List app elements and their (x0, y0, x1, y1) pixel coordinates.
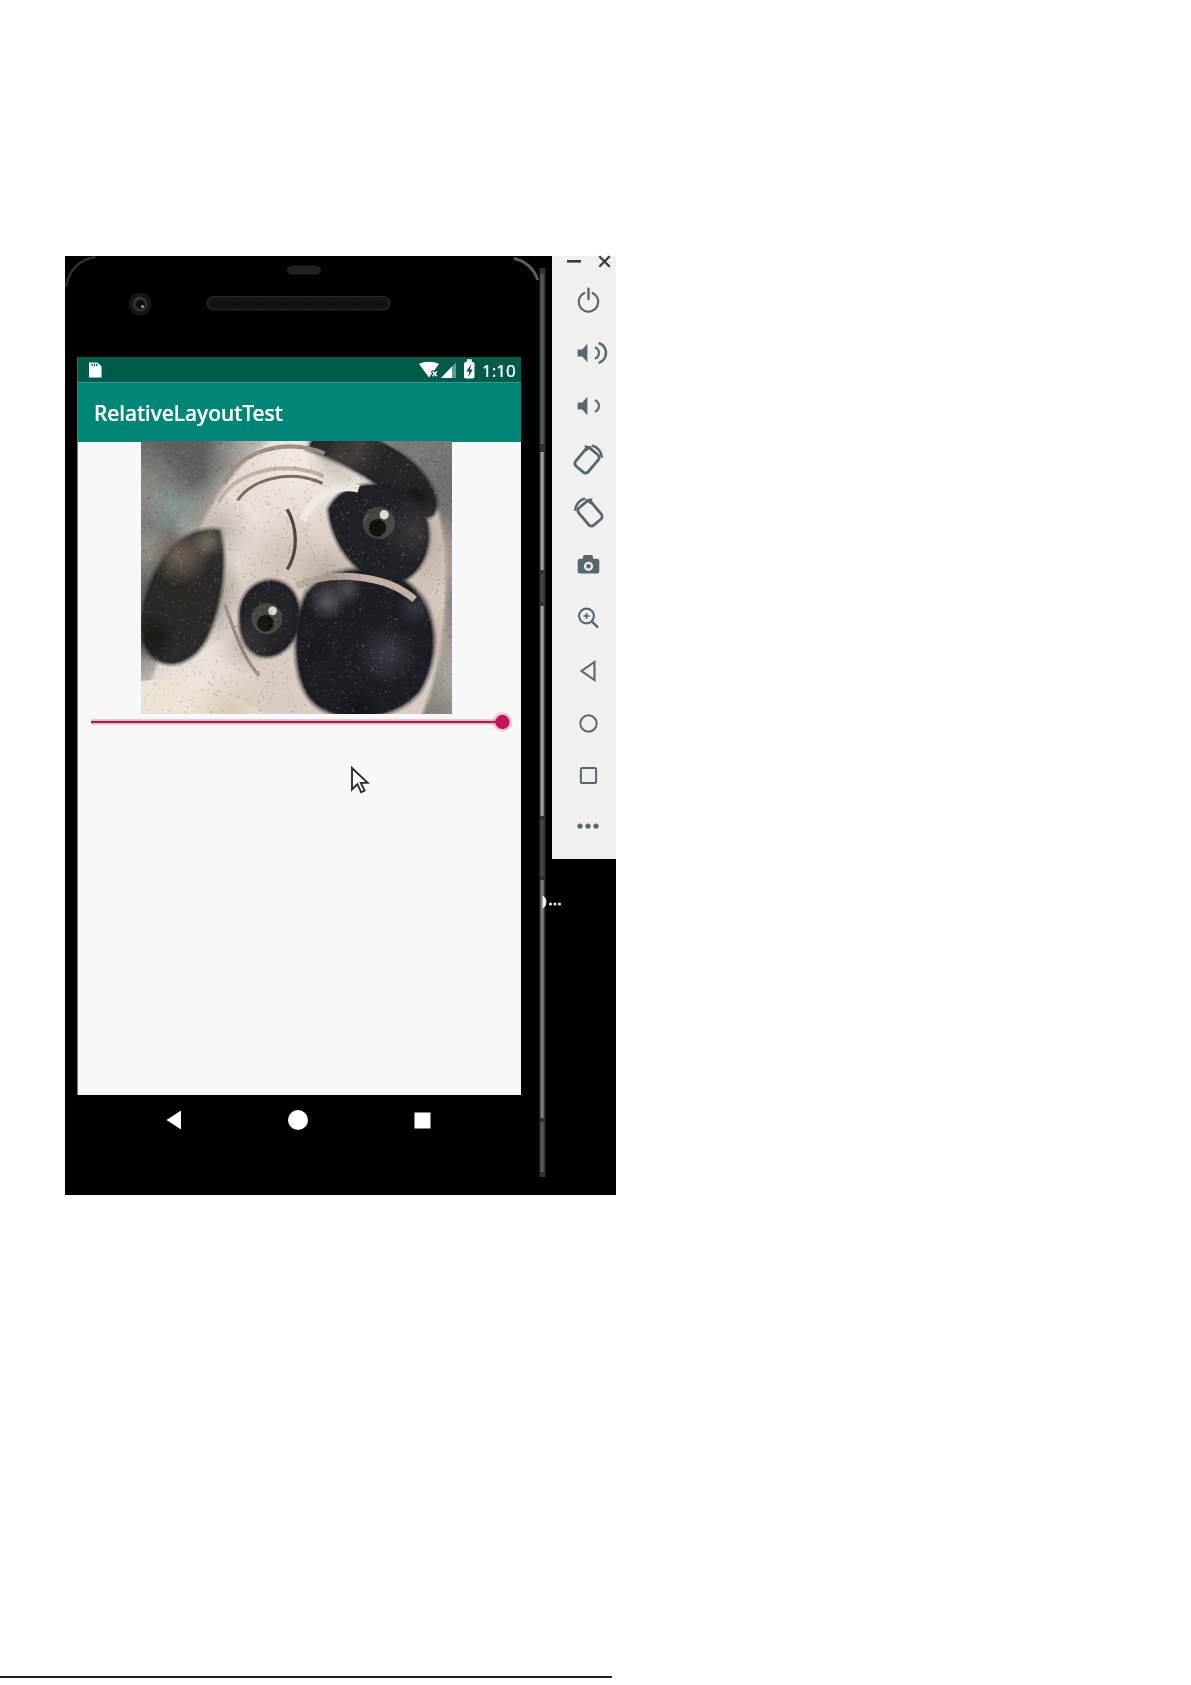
button[interactable]: Rotate right (558, 493, 610, 531)
button[interactable]: Take screenshot (558, 546, 610, 584)
button[interactable]: Volume up (558, 334, 610, 372)
button[interactable]: Seek bar (85, 708, 513, 736)
button[interactable]: Overview (405, 1100, 445, 1140)
staticText: RelativeLayoutTest (94, 399, 283, 428)
button[interactable]: Rotate left (558, 440, 610, 478)
button[interactable]: Pug photo (143, 442, 455, 714)
button[interactable]: Back (558, 652, 610, 690)
staticText: 1:10 (482, 359, 516, 382)
button[interactable]: Power (558, 281, 610, 319)
button[interactable]: Close (594, 252, 616, 272)
button[interactable]: RelativeLayoutTest (78, 383, 522, 443)
button[interactable]: More (558, 807, 610, 845)
button[interactable]: Volume down (558, 387, 610, 425)
button[interactable]: Back (166, 1100, 206, 1140)
button[interactable]: Home (558, 705, 610, 743)
button[interactable]: Minimize (562, 252, 586, 272)
button[interactable]: Zoom (558, 600, 610, 638)
button[interactable]: Home (288, 1100, 328, 1140)
button[interactable]: Overview (558, 757, 610, 795)
